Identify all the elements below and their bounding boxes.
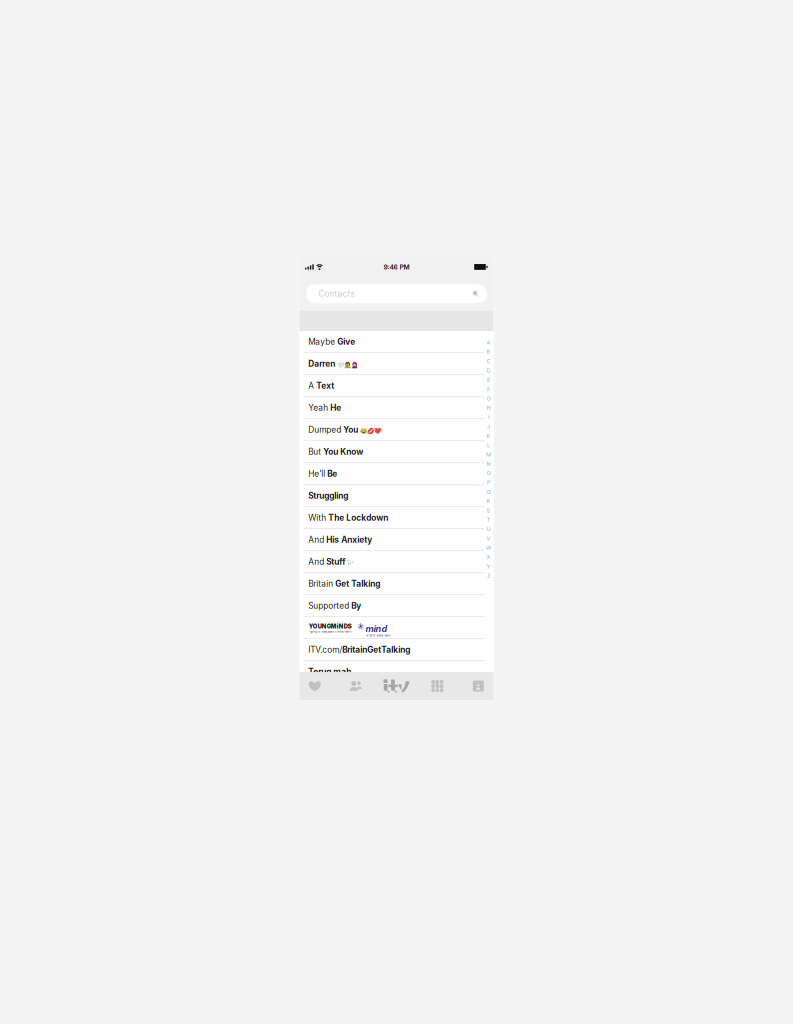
staticText: Maybe Give [308, 337, 355, 347]
button[interactable]: ITV [376, 672, 417, 700]
staticText: He'll Be [308, 469, 337, 479]
staticText: O [486, 470, 490, 476]
staticText: W [486, 544, 491, 551]
staticText: And Stuff 🏳️ [308, 557, 354, 567]
staticText: Britain Get Talking [308, 579, 380, 589]
staticText: But You Know [308, 447, 363, 457]
button[interactable]: A Text [299, 375, 493, 397]
button[interactable]: And Stuff 🏳️ [299, 551, 493, 573]
staticText: I [488, 414, 489, 420]
button[interactable]: But You Know [299, 441, 493, 463]
staticText: E [487, 376, 490, 383]
staticText: Supported By [308, 601, 361, 611]
staticText: Struggling [308, 491, 348, 501]
staticText: Yeah He [308, 403, 341, 413]
staticText: mind [366, 623, 388, 634]
button[interactable]: Favourites [294, 672, 335, 700]
staticText: G [486, 395, 490, 402]
staticText: 9:46 PM [383, 263, 409, 271]
button[interactable]: Struggling [299, 485, 493, 507]
staticText: K [486, 432, 490, 439]
button[interactable]: ITV.com/BritainGetTalking [299, 639, 493, 661]
staticText: And His Anxiety [308, 535, 372, 545]
button[interactable]: YOUNGMiNDS [299, 617, 493, 639]
staticText: C [486, 358, 490, 364]
staticText: Terug mah [308, 667, 351, 677]
staticText: P [487, 479, 490, 486]
staticText: Darren 🤍🧟🧕 [308, 359, 358, 369]
staticText: B [486, 348, 490, 355]
button[interactable]: Dumped You 😂💋❤️ [299, 419, 493, 441]
staticText: H [486, 404, 490, 411]
staticText: Q [486, 488, 490, 495]
button[interactable]: And His Anxiety [299, 529, 493, 551]
staticText: S [486, 507, 490, 514]
button[interactable]: With The Lockdown [299, 507, 493, 529]
staticText: YOUNGMiNDS [309, 623, 352, 630]
button[interactable]: Contacts [458, 672, 499, 700]
staticText: R [486, 498, 490, 504]
button[interactable]: He'll Be [299, 463, 493, 485]
button[interactable]: Keypad [417, 672, 458, 700]
staticText: U [486, 526, 490, 532]
button[interactable]: Recents [335, 672, 376, 700]
staticText: With The Lockdown [308, 513, 388, 523]
staticText: T [486, 516, 490, 523]
staticText: L [487, 442, 490, 448]
button[interactable]: Maybe Give [299, 331, 493, 353]
staticText: fighting for young people's mental healt… [309, 630, 351, 633]
staticText: A [486, 339, 490, 346]
staticText: X [486, 554, 490, 560]
button[interactable]: Darren 🤍🧟🧕 [299, 353, 493, 375]
staticText: ITV.com/BritainGetTalking [308, 645, 410, 655]
staticText: Y [486, 563, 490, 570]
staticText: N [486, 460, 490, 467]
button[interactable]: Supported By [299, 595, 493, 617]
staticText: F [487, 386, 490, 392]
staticText: Dumped You 😂💋❤️ [308, 425, 381, 435]
button[interactable]: Contacts [306, 284, 487, 303]
staticText: J [487, 423, 490, 430]
button[interactable]: Yeah He [299, 397, 493, 419]
staticText: D [486, 367, 490, 374]
staticText: M [486, 451, 491, 458]
button[interactable]: Britain Get Talking [299, 573, 493, 595]
staticText: Z [487, 572, 490, 579]
staticText: V [486, 535, 490, 542]
staticText: A Text [308, 381, 334, 391]
staticText: Contacts [318, 289, 354, 299]
staticText: for better mental health [366, 634, 391, 637]
